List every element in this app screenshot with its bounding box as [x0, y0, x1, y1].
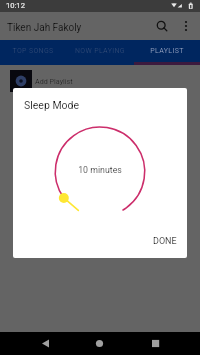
- staticText: Tiken Jah Fakoly: [7, 22, 82, 34]
- button[interactable]: NOW PLAYING: [66, 40, 133, 61]
- staticText: DONE: [153, 236, 177, 247]
- staticText: TOP SONGS: [12, 47, 54, 55]
- button[interactable]: Search: [152, 16, 172, 36]
- button[interactable]: Back: [30, 332, 70, 355]
- staticText: Add Playlist: [35, 77, 73, 85]
- staticText: NOW PLAYING: [75, 47, 125, 55]
- button[interactable]: Recent apps: [135, 332, 175, 355]
- button[interactable]: Home: [80, 332, 120, 355]
- button[interactable]: Add Playlist: [0, 70, 200, 92]
- staticText: Sleep Mode: [24, 99, 80, 111]
- staticText: 10:12: [6, 1, 25, 10]
- button[interactable]: PLAYLIST: [133, 40, 200, 61]
- button[interactable]: DONE: [145, 231, 185, 252]
- button[interactable]: More options: [176, 16, 196, 36]
- staticText: PLAYLIST: [150, 47, 184, 55]
- button[interactable]: TOP SONGS: [0, 40, 66, 61]
- staticText: 10 minutes: [78, 165, 122, 175]
